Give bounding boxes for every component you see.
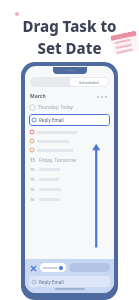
button[interactable]: [69, 263, 110, 272]
staticText: Reply Email: [39, 117, 64, 123]
button[interactable]: [30, 148, 109, 152]
button[interactable]: Reply Email: [29, 276, 110, 287]
button[interactable]: 16: [30, 187, 109, 192]
staticText: Set Date: [37, 38, 102, 58]
button[interactable]: Scheduled: [70, 78, 108, 86]
button[interactable]: [30, 139, 109, 143]
button[interactable]: Reply Email: [29, 114, 110, 126]
staticText: 15: [30, 177, 35, 182]
staticText: Drag Task to: [22, 16, 117, 36]
button[interactable]: [30, 130, 109, 134]
button[interactable]: More options: [95, 94, 109, 100]
button[interactable]: 15: [30, 167, 109, 172]
staticText: Thursday, Today: [38, 104, 73, 110]
staticText: March: [30, 93, 46, 100]
staticText: 15: [30, 167, 35, 172]
staticText: 15: [30, 157, 36, 163]
button[interactable]: 15: [30, 177, 109, 182]
staticText: Scheduled: [79, 80, 99, 85]
button[interactable]: 16: [30, 197, 109, 202]
button[interactable]: Close: [29, 264, 37, 272]
staticText: Friday, Tomorrow: [39, 157, 77, 163]
staticText: 16: [30, 197, 35, 202]
button[interactable]: [40, 263, 66, 272]
staticText: 16: [30, 187, 35, 192]
staticText: Reply Email: [39, 279, 64, 285]
